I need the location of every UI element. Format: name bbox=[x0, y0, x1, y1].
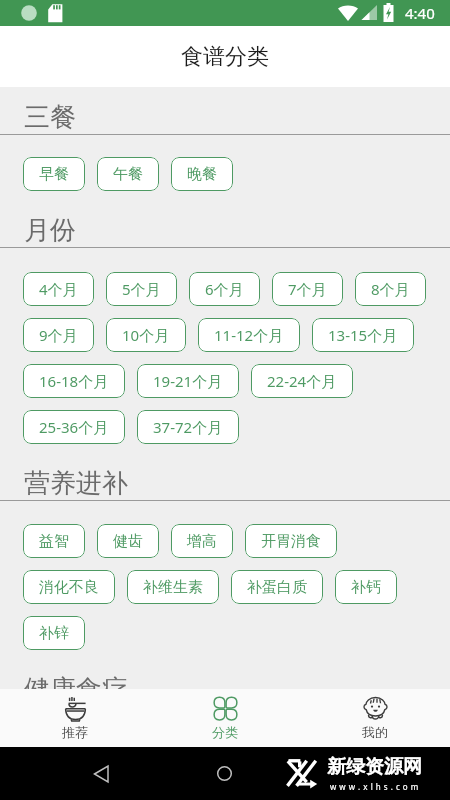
staticText: 9个月 bbox=[39, 325, 78, 345]
button[interactable]: 补锌 bbox=[23, 616, 85, 650]
staticText: 消化不良 bbox=[39, 578, 99, 597]
button[interactable]: 早餐 bbox=[23, 157, 85, 191]
button[interactable]: 25-36个月 bbox=[23, 410, 125, 444]
button[interactable]: 增高 bbox=[171, 524, 233, 558]
button[interactable]: 分类 bbox=[150, 689, 300, 747]
staticText: 13-15个月 bbox=[328, 325, 398, 345]
staticText: w w w . x l h s . c o m bbox=[330, 781, 419, 792]
button[interactable]: 晚餐 bbox=[171, 157, 233, 191]
button[interactable]: 8个月 bbox=[355, 272, 426, 306]
staticText: 益智 bbox=[39, 532, 69, 551]
staticText: 4个月 bbox=[39, 279, 78, 299]
button[interactable]: 推荐 bbox=[0, 689, 150, 747]
staticText: 补维生素 bbox=[143, 578, 203, 597]
button[interactable]: 19-21个月 bbox=[137, 364, 239, 398]
button[interactable]: 健齿 bbox=[97, 524, 159, 558]
staticText: 10个月 bbox=[122, 325, 170, 345]
staticText: 11-12个月 bbox=[214, 325, 284, 345]
staticText: 营养进补 bbox=[24, 467, 128, 500]
staticText: 晚餐 bbox=[187, 165, 217, 184]
button[interactable]: 午餐 bbox=[97, 157, 159, 191]
button[interactable]: 补维生素 bbox=[127, 570, 219, 604]
staticText: 三餐 bbox=[24, 101, 76, 134]
staticText: 月份 bbox=[24, 214, 76, 247]
button[interactable]: 补蛋白质 bbox=[231, 570, 323, 604]
button[interactable]: 37-72个月 bbox=[137, 410, 239, 444]
staticText: 7个月 bbox=[288, 279, 327, 299]
staticText: 16-18个月 bbox=[39, 371, 109, 391]
staticText: 开胃消食 bbox=[261, 532, 321, 551]
button[interactable]: 10个月 bbox=[106, 318, 186, 352]
staticText: 早餐 bbox=[39, 165, 69, 184]
button[interactable]: 益智 bbox=[23, 524, 85, 558]
button[interactable]: 开胃消食 bbox=[245, 524, 337, 558]
button[interactable]: 我的 bbox=[300, 689, 450, 747]
button[interactable]: 6个月 bbox=[189, 272, 260, 306]
staticText: 4:40 bbox=[405, 3, 435, 23]
staticText: 22-24个月 bbox=[267, 371, 337, 391]
staticText: 5个月 bbox=[122, 279, 161, 299]
staticText: 37-72个月 bbox=[153, 417, 223, 437]
button[interactable]: 4个月 bbox=[23, 272, 94, 306]
staticText: 6个月 bbox=[205, 279, 244, 299]
button[interactable]: 消化不良 bbox=[23, 570, 115, 604]
button[interactable]: 7个月 bbox=[272, 272, 343, 306]
staticText: 我的 bbox=[362, 724, 388, 740]
staticText: 补蛋白质 bbox=[247, 578, 307, 597]
staticText: 健齿 bbox=[113, 532, 143, 551]
staticText: 19-21个月 bbox=[153, 371, 223, 391]
button[interactable]: 13-15个月 bbox=[312, 318, 414, 352]
staticText: 补钙 bbox=[351, 578, 381, 597]
button[interactable]: 11-12个月 bbox=[198, 318, 300, 352]
staticText: 补锌 bbox=[39, 624, 69, 643]
button[interactable]: 5个月 bbox=[106, 272, 177, 306]
staticText: 午餐 bbox=[113, 165, 143, 184]
staticText: 食谱分类 bbox=[181, 43, 269, 71]
button[interactable]: 16-18个月 bbox=[23, 364, 125, 398]
staticText: 新绿资源网 bbox=[327, 755, 422, 779]
staticText: 推荐 bbox=[62, 724, 88, 740]
button[interactable]: 22-24个月 bbox=[251, 364, 353, 398]
staticText: 8个月 bbox=[371, 279, 410, 299]
staticText: 健康食疗 bbox=[24, 673, 128, 689]
button[interactable]: 补钙 bbox=[335, 570, 397, 604]
staticText: 分类 bbox=[212, 724, 238, 740]
button[interactable]: 9个月 bbox=[23, 318, 94, 352]
staticText: 25-36个月 bbox=[39, 417, 109, 437]
staticText: 增高 bbox=[187, 532, 217, 551]
